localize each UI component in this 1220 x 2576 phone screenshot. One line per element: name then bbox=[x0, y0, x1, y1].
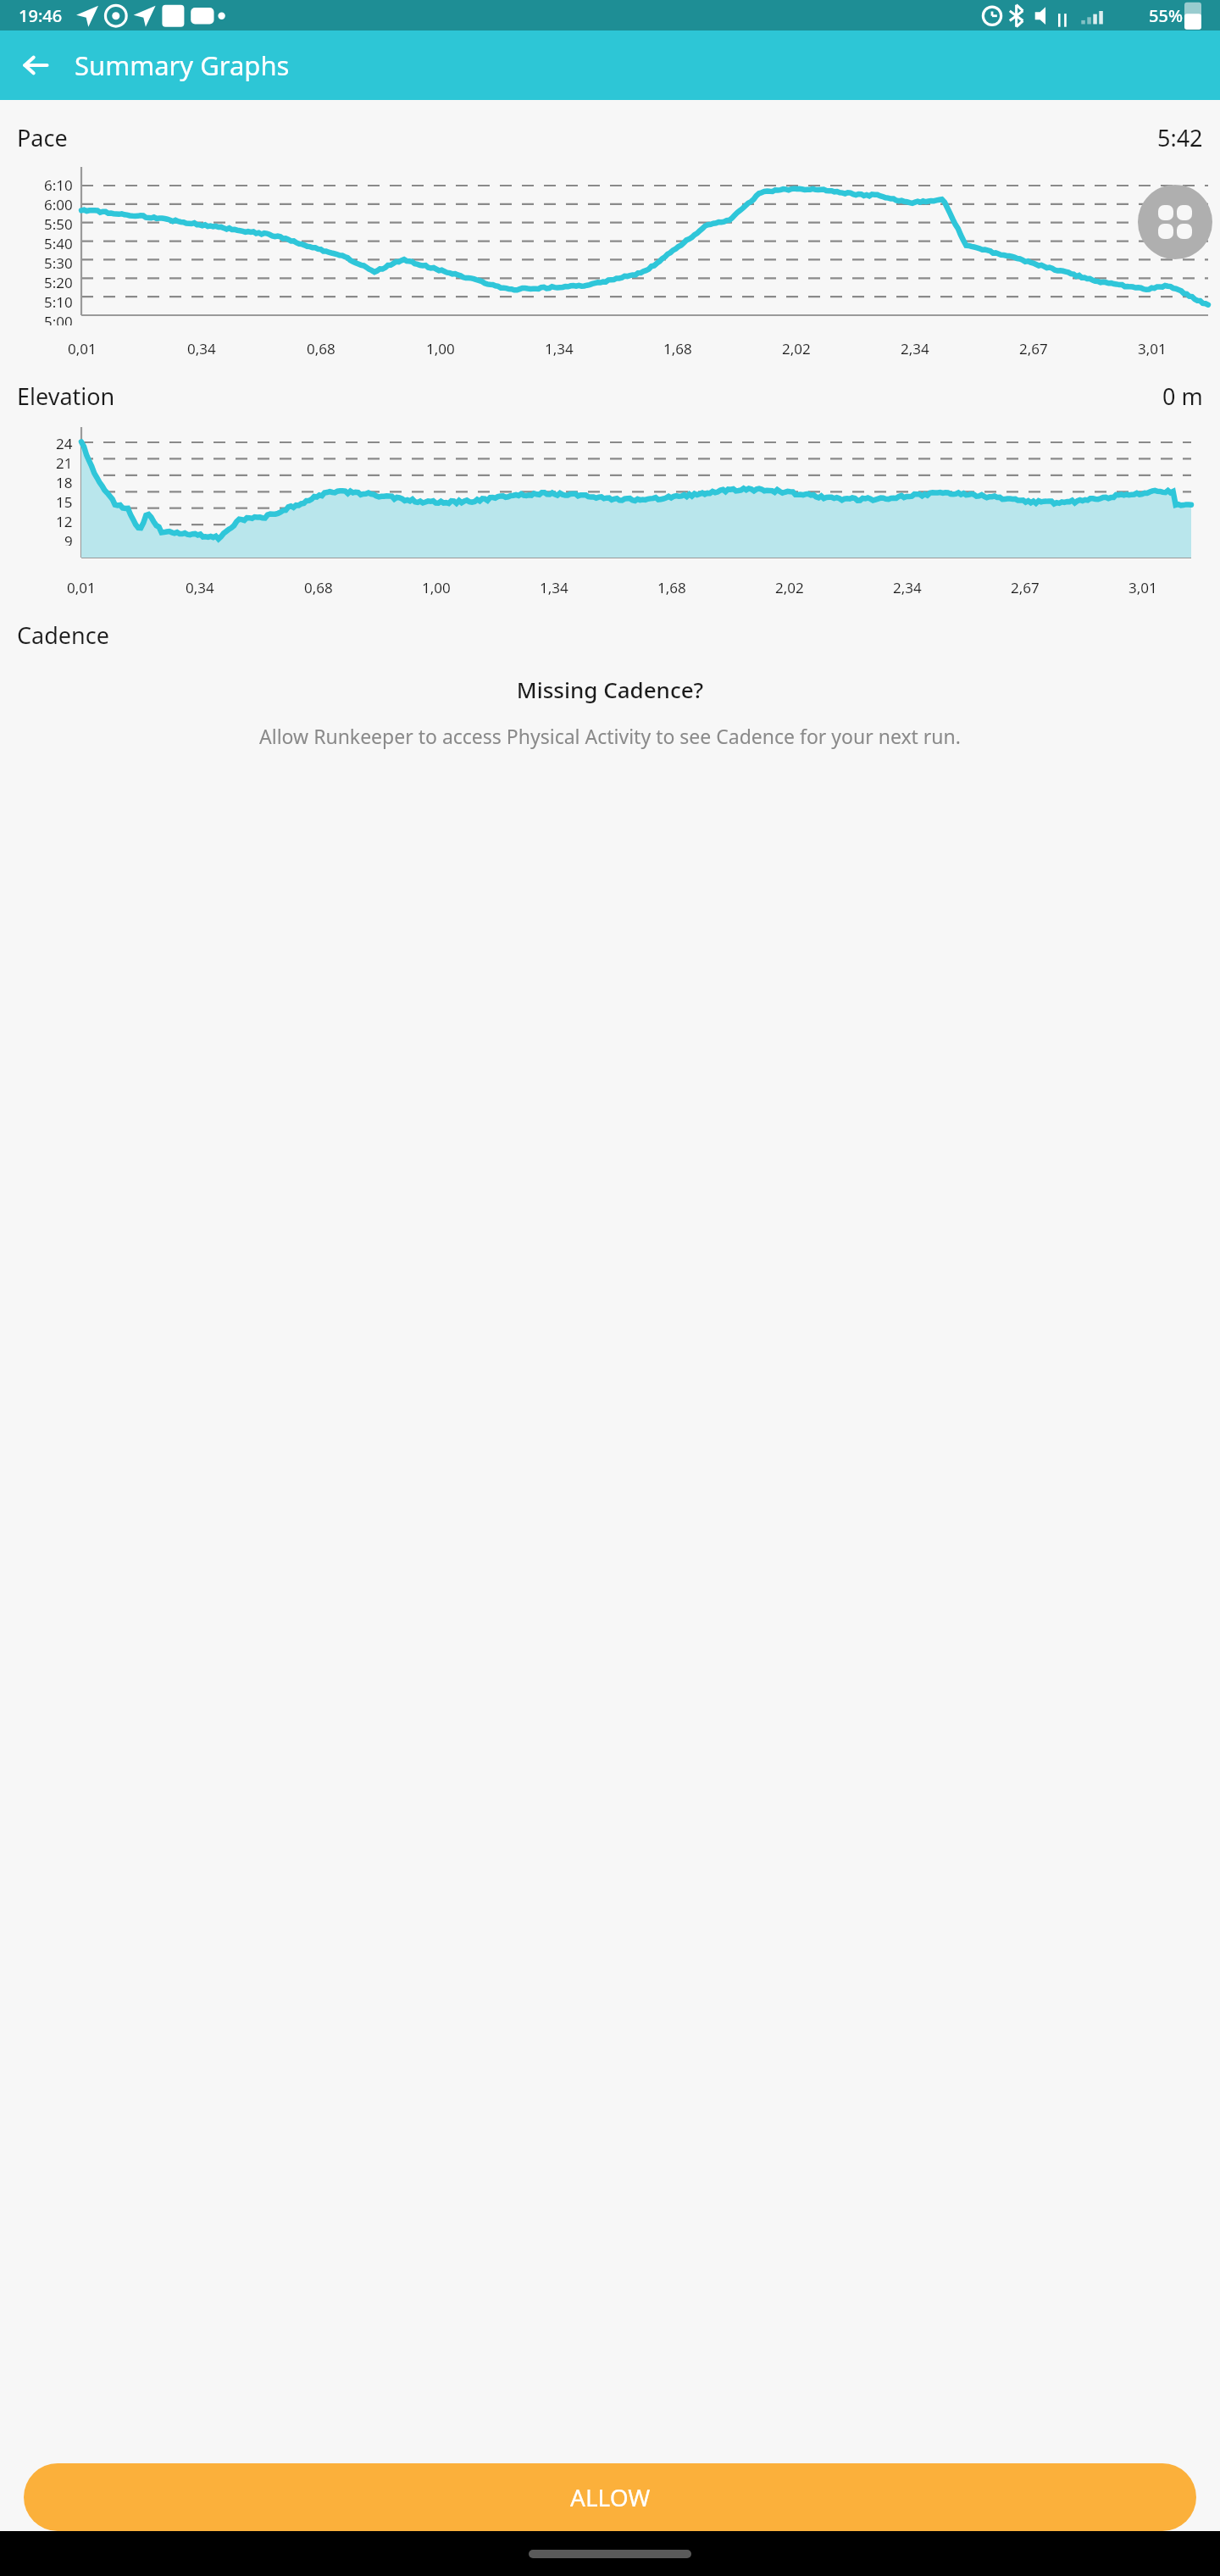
staticText: Summary Graphs bbox=[75, 47, 290, 83]
staticText: 0,68 bbox=[304, 578, 333, 597]
staticText: 0,68 bbox=[307, 339, 335, 358]
staticText: 5:10 bbox=[44, 292, 73, 312]
staticText: 1,68 bbox=[663, 339, 692, 358]
staticText: 55% bbox=[1149, 4, 1183, 27]
staticText: Pace bbox=[17, 122, 68, 153]
staticText: 9 bbox=[64, 531, 73, 546]
staticText: 5:50 bbox=[44, 214, 73, 234]
staticText: 6:00 bbox=[44, 195, 73, 214]
staticText: 0,01 bbox=[68, 339, 97, 358]
staticText: 1,00 bbox=[422, 578, 451, 597]
staticText: 0,34 bbox=[186, 578, 214, 597]
button[interactable]: Change graph layout bbox=[1138, 185, 1212, 259]
staticText: 15 bbox=[56, 492, 73, 512]
staticText: 2,67 bbox=[1019, 339, 1048, 358]
button[interactable]: Back bbox=[12, 42, 59, 89]
staticText: ALLOW bbox=[570, 2481, 651, 2513]
staticText: 0,01 bbox=[67, 578, 96, 597]
staticText: Allow Runkeeper to access Physical Activ… bbox=[49, 723, 1171, 749]
staticText: 18 bbox=[56, 473, 73, 492]
staticText: 2,67 bbox=[1011, 578, 1040, 597]
staticText: Cadence bbox=[17, 619, 109, 651]
staticText: 5:00 bbox=[44, 312, 73, 325]
staticText: 12 bbox=[56, 512, 73, 531]
staticText: 21 bbox=[56, 453, 73, 473]
staticText: 3,01 bbox=[1138, 339, 1167, 358]
staticText: 1,00 bbox=[426, 339, 455, 358]
staticText: 0 m bbox=[1162, 380, 1203, 412]
staticText: 6:10 bbox=[44, 175, 73, 195]
staticText: 2,34 bbox=[901, 339, 929, 358]
staticText: 5:20 bbox=[44, 273, 73, 292]
staticText: 2,34 bbox=[893, 578, 922, 597]
staticText: 19:46 bbox=[19, 4, 63, 27]
staticText: Elevation bbox=[17, 380, 115, 412]
staticText: 24 bbox=[56, 434, 73, 453]
staticText: 1,34 bbox=[540, 578, 568, 597]
staticText: 5:30 bbox=[44, 253, 73, 273]
button[interactable]: ALLOW bbox=[24, 2463, 1196, 2531]
staticText: 5:42 bbox=[1157, 122, 1203, 153]
staticText: 2,02 bbox=[775, 578, 804, 597]
staticText: 1,34 bbox=[545, 339, 574, 358]
staticText: 5:40 bbox=[44, 234, 73, 253]
staticText: 3,01 bbox=[1128, 578, 1157, 597]
staticText: 0,34 bbox=[187, 339, 216, 358]
staticText: Missing Cadence? bbox=[0, 675, 1220, 704]
staticText: 2,02 bbox=[782, 339, 811, 358]
staticText: 1,68 bbox=[657, 578, 686, 597]
